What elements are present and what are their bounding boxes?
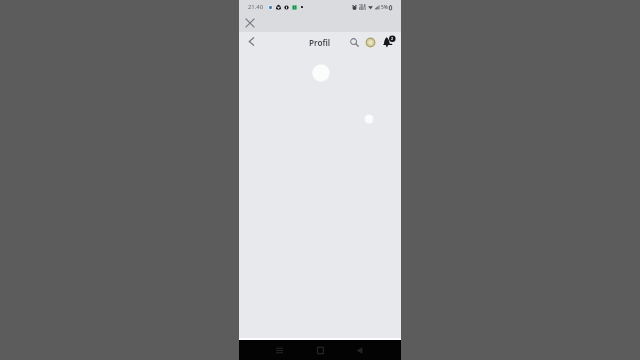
staticText: 10.8	[359, 3, 366, 7]
staticText: 2	[391, 36, 394, 41]
button[interactable]: Search	[346, 34, 362, 50]
button[interactable]: Notifications	[380, 33, 396, 50]
button[interactable]: Back	[351, 340, 367, 360]
button[interactable]: Rewards	[362, 34, 379, 51]
button[interactable]: Recents	[271, 340, 287, 360]
staticText: 21.40	[248, 3, 264, 11]
button[interactable]: Home	[312, 340, 328, 360]
button[interactable]: Back	[243, 33, 260, 50]
staticText: KB/S	[359, 7, 366, 11]
staticText: Profil	[309, 37, 331, 48]
staticText: 5%	[381, 4, 388, 11]
button[interactable]: Close	[241, 14, 258, 31]
